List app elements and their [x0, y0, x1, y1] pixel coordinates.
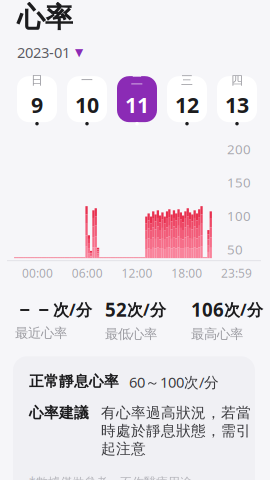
staticText: 13: [225, 91, 249, 119]
staticText: 正常靜息心率: [29, 372, 119, 390]
staticText: ▼: [75, 46, 83, 58]
button[interactable]: 二: [117, 76, 157, 122]
staticText: 106: [191, 297, 224, 322]
staticText: 2023-01: [17, 43, 70, 62]
staticText: 10: [75, 91, 99, 119]
staticText: 23:59: [221, 265, 252, 281]
staticText: 200: [227, 140, 251, 158]
staticText: 心率建議: [29, 404, 89, 422]
staticText: 60～100次/分: [129, 372, 219, 392]
staticText: 12: [175, 91, 199, 119]
staticText: 11: [125, 91, 149, 119]
staticText: 12:00: [121, 265, 152, 281]
staticText: *數據僅做參考，不作醫療用途: [29, 474, 192, 480]
staticText: 四: [231, 73, 243, 88]
staticText: 00:00: [22, 265, 53, 281]
staticText: 次/分: [224, 299, 263, 320]
staticText: 06:00: [72, 265, 103, 281]
staticText: 一: [81, 73, 93, 88]
staticText: 次/分: [53, 299, 92, 320]
button[interactable]: 四: [217, 76, 257, 122]
staticText: 100: [227, 207, 251, 225]
button[interactable]: 三: [167, 76, 207, 122]
staticText: 150: [227, 174, 251, 191]
staticText: 二: [131, 73, 143, 88]
staticText: －－: [15, 298, 53, 321]
button[interactable]: 日: [17, 76, 57, 122]
staticText: 50: [227, 240, 243, 258]
staticText: 9: [31, 91, 43, 119]
staticText: 52: [105, 297, 127, 322]
staticText: 日: [31, 73, 43, 88]
staticText: 18:00: [171, 265, 202, 281]
staticText: 有心率過高狀況，若當時處於靜息狀態，需引起注意: [101, 404, 251, 458]
staticText: 最高心率: [191, 326, 243, 342]
staticText: 最低心率: [105, 326, 157, 342]
staticText: 次/分: [127, 299, 166, 320]
button[interactable]: 一: [67, 76, 107, 122]
staticText: 最近心率: [15, 325, 67, 341]
staticText: 三: [181, 73, 193, 88]
button[interactable]: 2023-01: [0, 35, 83, 62]
staticText: 心率: [17, 0, 73, 35]
